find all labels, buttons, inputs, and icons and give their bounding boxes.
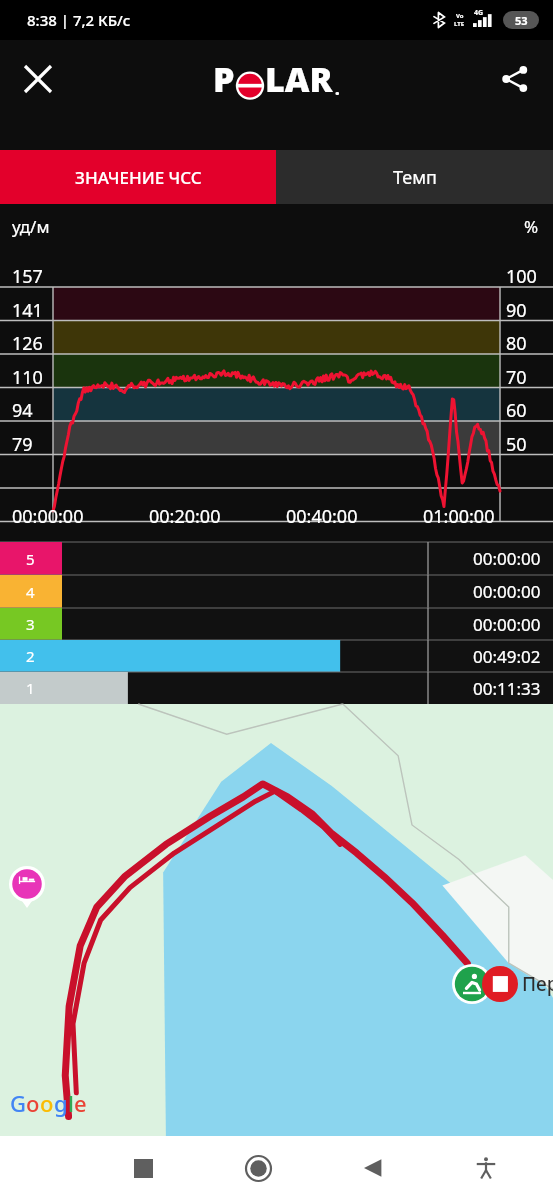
staticText: 00:00:00 <box>12 504 84 529</box>
staticText: 157 <box>12 264 43 289</box>
staticText: 00:40:00 <box>286 504 358 529</box>
staticText: 3 <box>26 614 35 634</box>
staticText: 70 <box>506 365 527 390</box>
staticText: 00:20:00 <box>149 504 221 529</box>
button[interactable]: 3 <box>0 608 553 640</box>
staticText: 80 <box>506 331 527 356</box>
staticText: G <box>10 1088 26 1118</box>
button[interactable]: Перём <box>0 704 553 1136</box>
staticText: 110 <box>12 365 43 390</box>
button[interactable]: Back <box>345 1140 401 1196</box>
staticText: 1 <box>26 678 35 698</box>
staticText: 00:00:00 <box>473 613 541 636</box>
button[interactable]: 4 <box>0 575 553 608</box>
staticText: 00:11:33 <box>473 677 541 700</box>
staticText: o <box>40 1088 54 1118</box>
staticText: 100 <box>506 264 537 289</box>
staticText: 00:49:02 <box>473 645 541 668</box>
button[interactable]: Home <box>230 1140 286 1196</box>
staticText: ЗНАЧЕНИЕ ЧСС <box>75 166 202 189</box>
staticText: % <box>524 215 539 238</box>
button[interactable]: Темп <box>276 150 553 204</box>
staticText: 90 <box>506 298 527 323</box>
staticText: 141 <box>12 298 43 323</box>
button[interactable]: Recents <box>115 1140 171 1196</box>
staticText: o <box>26 1088 40 1118</box>
button[interactable]: Accessibility <box>458 1140 514 1196</box>
staticText: уд/м <box>12 215 50 238</box>
staticText: Перём <box>522 971 553 997</box>
staticText: 4 <box>26 582 35 602</box>
staticText: 126 <box>12 331 43 356</box>
staticText: 00:00:00 <box>473 547 541 570</box>
button[interactable]: 5 <box>0 542 553 575</box>
staticText: Vo <box>456 12 464 20</box>
button[interactable]: 2 <box>0 640 553 672</box>
button[interactable]: 1 <box>0 672 553 704</box>
staticText: 60 <box>506 398 527 423</box>
staticText: l <box>68 1088 74 1118</box>
staticText: 8:38 | 7,2 КБ/с <box>27 10 131 30</box>
staticText: 5 <box>26 549 35 569</box>
staticText: 4G <box>474 8 484 18</box>
staticText: e <box>74 1088 87 1118</box>
staticText: g <box>54 1088 68 1118</box>
staticText: LTE <box>454 20 465 28</box>
staticText: 94 <box>12 398 33 423</box>
staticText: 50 <box>506 432 527 457</box>
button[interactable]: Close <box>8 49 68 109</box>
staticText: 53 <box>515 13 528 28</box>
staticText: 00:00:00 <box>473 580 541 603</box>
staticText: . <box>335 78 340 100</box>
staticText: 79 <box>12 432 33 457</box>
button[interactable]: Share <box>485 49 545 109</box>
button[interactable]: ЗНАЧЕНИЕ ЧСС <box>0 150 276 204</box>
staticText: LAR <box>265 56 333 102</box>
staticText: P <box>213 56 235 102</box>
staticText: 2 <box>26 646 35 666</box>
staticText: Темп <box>393 165 437 190</box>
staticText: 01:00:00 <box>423 504 495 529</box>
